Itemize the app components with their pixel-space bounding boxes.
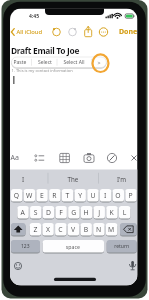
button[interactable] bbox=[100, 188, 111, 201]
button[interactable] bbox=[33, 151, 47, 165]
button[interactable] bbox=[87, 188, 98, 201]
button[interactable] bbox=[10, 26, 50, 38]
button[interactable] bbox=[82, 151, 96, 165]
button[interactable] bbox=[17, 205, 28, 218]
button[interactable] bbox=[36, 188, 47, 201]
button[interactable] bbox=[113, 188, 124, 201]
button[interactable] bbox=[24, 188, 35, 201]
button[interactable] bbox=[43, 205, 54, 218]
button[interactable] bbox=[127, 259, 139, 272]
button[interactable] bbox=[127, 151, 138, 165]
button[interactable] bbox=[10, 170, 48, 185]
button[interactable] bbox=[11, 239, 40, 252]
button[interactable] bbox=[30, 222, 41, 235]
button[interactable] bbox=[62, 188, 73, 201]
button[interactable] bbox=[51, 26, 62, 38]
button[interactable] bbox=[120, 222, 137, 235]
button[interactable] bbox=[48, 170, 98, 185]
button[interactable] bbox=[57, 57, 92, 68]
button[interactable] bbox=[68, 222, 79, 235]
button[interactable] bbox=[55, 222, 66, 235]
button[interactable] bbox=[119, 205, 130, 218]
button[interactable] bbox=[106, 205, 117, 218]
button[interactable] bbox=[11, 222, 26, 235]
button[interactable] bbox=[75, 188, 86, 201]
button[interactable] bbox=[30, 205, 41, 218]
button[interactable] bbox=[106, 222, 117, 235]
button[interactable] bbox=[107, 239, 137, 252]
button[interactable] bbox=[55, 205, 66, 218]
button[interactable] bbox=[105, 151, 119, 165]
button[interactable] bbox=[81, 222, 92, 235]
button[interactable] bbox=[49, 188, 60, 201]
button[interactable] bbox=[68, 205, 79, 218]
button[interactable] bbox=[10, 151, 24, 165]
button[interactable] bbox=[92, 57, 107, 68]
button[interactable] bbox=[13, 259, 25, 272]
button[interactable] bbox=[98, 26, 109, 38]
button[interactable] bbox=[58, 151, 72, 165]
button[interactable] bbox=[67, 26, 78, 38]
button[interactable] bbox=[12, 57, 32, 68]
button[interactable] bbox=[94, 205, 105, 218]
button[interactable] bbox=[93, 222, 104, 235]
button[interactable] bbox=[117, 25, 138, 38]
button[interactable] bbox=[43, 239, 104, 252]
button[interactable] bbox=[32, 57, 57, 68]
button[interactable] bbox=[83, 26, 94, 38]
button[interactable] bbox=[81, 205, 92, 218]
button[interactable] bbox=[99, 170, 138, 185]
button[interactable] bbox=[42, 222, 53, 235]
button[interactable] bbox=[125, 188, 136, 201]
button[interactable] bbox=[11, 188, 22, 201]
